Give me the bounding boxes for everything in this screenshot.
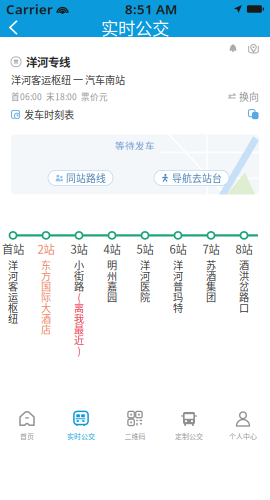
- button[interactable]: 首页: [0, 406, 54, 444]
- staticText: 大: [41, 302, 51, 313]
- staticText: 实时公交: [67, 431, 95, 440]
- staticText: 3站: [70, 241, 87, 257]
- staticText: 6站: [169, 241, 186, 257]
- staticText: 5站: [136, 241, 153, 257]
- staticText: 岔: [239, 281, 249, 291]
- staticText: 东: [41, 259, 51, 270]
- staticText: 发车时刻表: [24, 108, 74, 120]
- button[interactable]: 发车时刻表: [11, 108, 74, 120]
- staticText: 州: [107, 270, 117, 281]
- staticText: 二维码: [124, 431, 145, 440]
- staticText: 首站: [2, 241, 24, 257]
- staticText: 酒: [206, 270, 216, 281]
- staticText: 实时公交: [101, 15, 169, 40]
- staticText: 园: [107, 291, 117, 302]
- staticText: 酒: [239, 259, 249, 270]
- staticText: 方: [41, 270, 51, 281]
- staticText: 首06:00 末18:00 票价元: [11, 91, 108, 101]
- button[interactable]: 定制公交: [162, 406, 216, 444]
- staticText: 洋: [173, 259, 183, 270]
- staticText: 定制公交: [175, 431, 203, 440]
- staticText: 洋河客运枢纽 一 汽车南站: [11, 74, 125, 86]
- staticText: 国: [41, 281, 51, 291]
- staticText: 2站: [37, 241, 54, 257]
- staticText: 路: [239, 291, 249, 302]
- staticText: 明: [107, 259, 117, 270]
- staticText: 8站: [235, 241, 252, 257]
- staticText: 离: [74, 302, 84, 313]
- staticText: 玛: [173, 291, 183, 302]
- button[interactable]: 同站路线: [48, 170, 113, 185]
- staticText: 客: [8, 281, 18, 291]
- staticText: 洪: [239, 270, 249, 281]
- staticText: 酒: [41, 313, 51, 324]
- staticText: 河: [173, 270, 183, 281]
- button[interactable]: 返回: [0, 19, 27, 36]
- staticText: 等待发车: [115, 139, 155, 151]
- staticText: 7站: [202, 241, 219, 257]
- staticText: 院: [140, 291, 150, 302]
- staticText: 纽: [8, 313, 18, 324]
- staticText: 换向: [239, 91, 259, 102]
- staticText: 同站路线: [66, 172, 106, 184]
- staticText: 际: [41, 291, 51, 302]
- staticText: 8:51 AM: [125, 0, 177, 18]
- staticText: ): [77, 345, 80, 356]
- staticText: 近: [74, 334, 84, 345]
- staticText: 洋河专线: [26, 55, 70, 69]
- staticText: 嘉: [107, 281, 117, 291]
- staticText: 首页: [20, 431, 34, 440]
- staticText: 小: [74, 259, 84, 270]
- staticText: 集: [206, 281, 216, 291]
- staticText: 医: [140, 281, 150, 291]
- button[interactable]: 线路图: [248, 109, 259, 120]
- button[interactable]: 地图: [248, 43, 259, 54]
- staticText: Carrier: [6, 0, 53, 18]
- staticText: 特: [173, 302, 183, 313]
- staticText: 河: [140, 270, 150, 281]
- staticText: 洋: [8, 259, 18, 270]
- staticText: 4站: [103, 241, 120, 257]
- staticText: 苏: [206, 259, 216, 270]
- button[interactable]: 实时公交: [54, 406, 108, 444]
- staticText: 个人中心: [229, 431, 257, 440]
- staticText: 普: [173, 281, 183, 291]
- staticText: 最: [74, 324, 84, 334]
- button[interactable]: 提醒: [228, 43, 238, 53]
- staticText: 导航去站台: [172, 172, 222, 184]
- staticText: 河: [8, 270, 18, 281]
- staticText: 我: [74, 313, 84, 324]
- staticText: 团: [206, 291, 216, 302]
- button[interactable]: 换向: [228, 91, 259, 102]
- button[interactable]: 二维码: [108, 406, 162, 444]
- staticText: 洋: [140, 259, 150, 270]
- staticText: 枢: [8, 302, 18, 313]
- staticText: 路: [74, 281, 84, 291]
- staticText: (: [77, 291, 80, 302]
- staticText: 店: [41, 324, 51, 334]
- button[interactable]: 导航去站台: [154, 170, 229, 185]
- staticText: 运: [8, 291, 18, 302]
- button[interactable]: 个人中心: [216, 406, 270, 444]
- staticText: 口: [239, 302, 249, 313]
- staticText: 街: [74, 270, 84, 281]
